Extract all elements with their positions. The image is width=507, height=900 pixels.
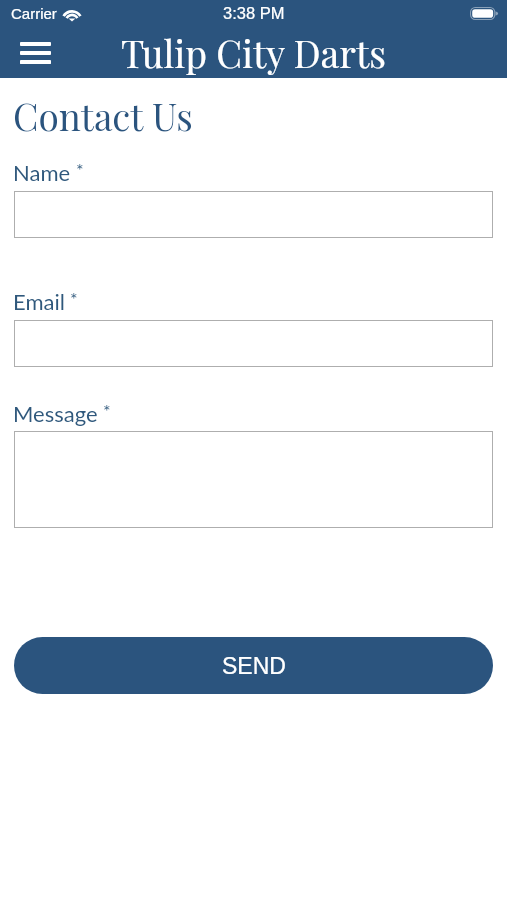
staticText: Carrier	[11, 5, 57, 22]
staticText: Tulip City Darts	[121, 27, 386, 77]
staticText: *	[76, 159, 84, 181]
button[interactable]: Open navigation menu	[6, 30, 64, 75]
staticText: Contact Us	[13, 91, 193, 140]
button[interactable]	[14, 191, 493, 238]
button[interactable]: SEND	[14, 637, 493, 694]
staticText: Message	[13, 400, 98, 426]
staticText: *	[103, 400, 111, 422]
button[interactable]	[14, 431, 493, 528]
staticText: Name	[13, 159, 71, 185]
button[interactable]	[14, 320, 493, 367]
staticText: 3:38 PM	[223, 4, 285, 22]
staticText: SEND	[222, 653, 286, 679]
staticText: Email	[13, 288, 65, 314]
staticText: *	[70, 288, 78, 310]
